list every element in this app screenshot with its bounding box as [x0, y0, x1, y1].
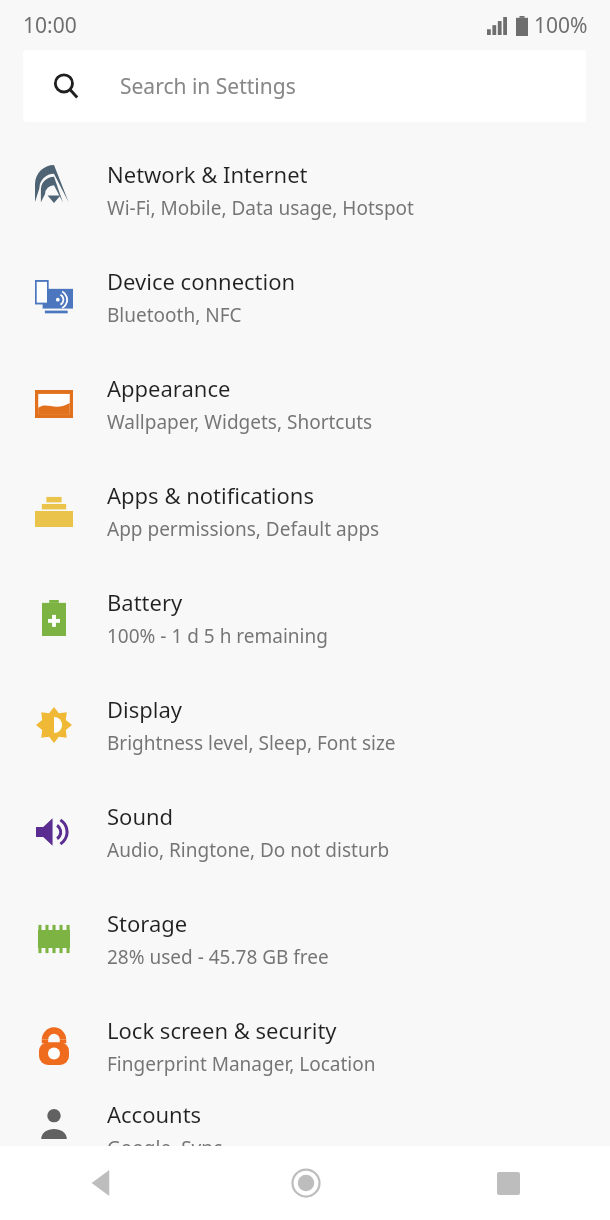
button[interactable]: Display — [0, 671, 610, 778]
staticText: 28% used - 45.78 GB free — [107, 944, 329, 970]
staticText: Brightness level, Sleep, Font size — [107, 730, 396, 756]
button[interactable]: Battery — [0, 564, 610, 671]
button[interactable]: Accounts — [0, 1099, 610, 1146]
staticText: Apps & notifications — [107, 480, 314, 510]
staticText: Fingerprint Manager, Location — [107, 1051, 376, 1077]
button[interactable]: Lock screen & security — [0, 992, 610, 1099]
button[interactable]: Device connection — [0, 243, 610, 350]
staticText: Wi-Fi, Mobile, Data usage, Hotspot — [107, 195, 414, 221]
button[interactable]: Apps & notifications — [0, 457, 610, 564]
button[interactable]: Storage — [0, 885, 610, 992]
staticText: Display — [107, 694, 183, 724]
staticText: Google, Sync — [107, 1135, 223, 1146]
staticText: Appearance — [107, 373, 231, 403]
staticText: Search in Settings — [120, 72, 296, 101]
staticText: Audio, Ringtone, Do not disturb — [107, 837, 390, 863]
button[interactable]: Recent apps — [407, 1146, 610, 1220]
button[interactable]: Home — [204, 1146, 407, 1220]
staticText: 10:00 — [23, 11, 77, 40]
button[interactable]: Sound — [0, 778, 610, 885]
staticText: 100% — [534, 11, 588, 40]
staticText: Device connection — [107, 266, 296, 296]
staticText: Lock screen & security — [107, 1015, 337, 1045]
staticText: Accounts — [107, 1099, 202, 1129]
button[interactable]: Network & Internet — [0, 136, 610, 243]
staticText: Network & Internet — [107, 159, 308, 189]
staticText: Battery — [107, 587, 183, 617]
button[interactable]: Appearance — [0, 350, 610, 457]
staticText: App permissions, Default apps — [107, 516, 380, 542]
staticText: Bluetooth, NFC — [107, 302, 242, 328]
staticText: Sound — [107, 801, 174, 831]
button[interactable]: Back — [0, 1146, 204, 1220]
staticText: Wallpaper, Widgets, Shortcuts — [107, 409, 373, 435]
staticText: 100% - 1 d 5 h remaining — [107, 623, 328, 649]
button[interactable]: Search in Settings — [23, 50, 586, 122]
staticText: Storage — [107, 908, 188, 938]
